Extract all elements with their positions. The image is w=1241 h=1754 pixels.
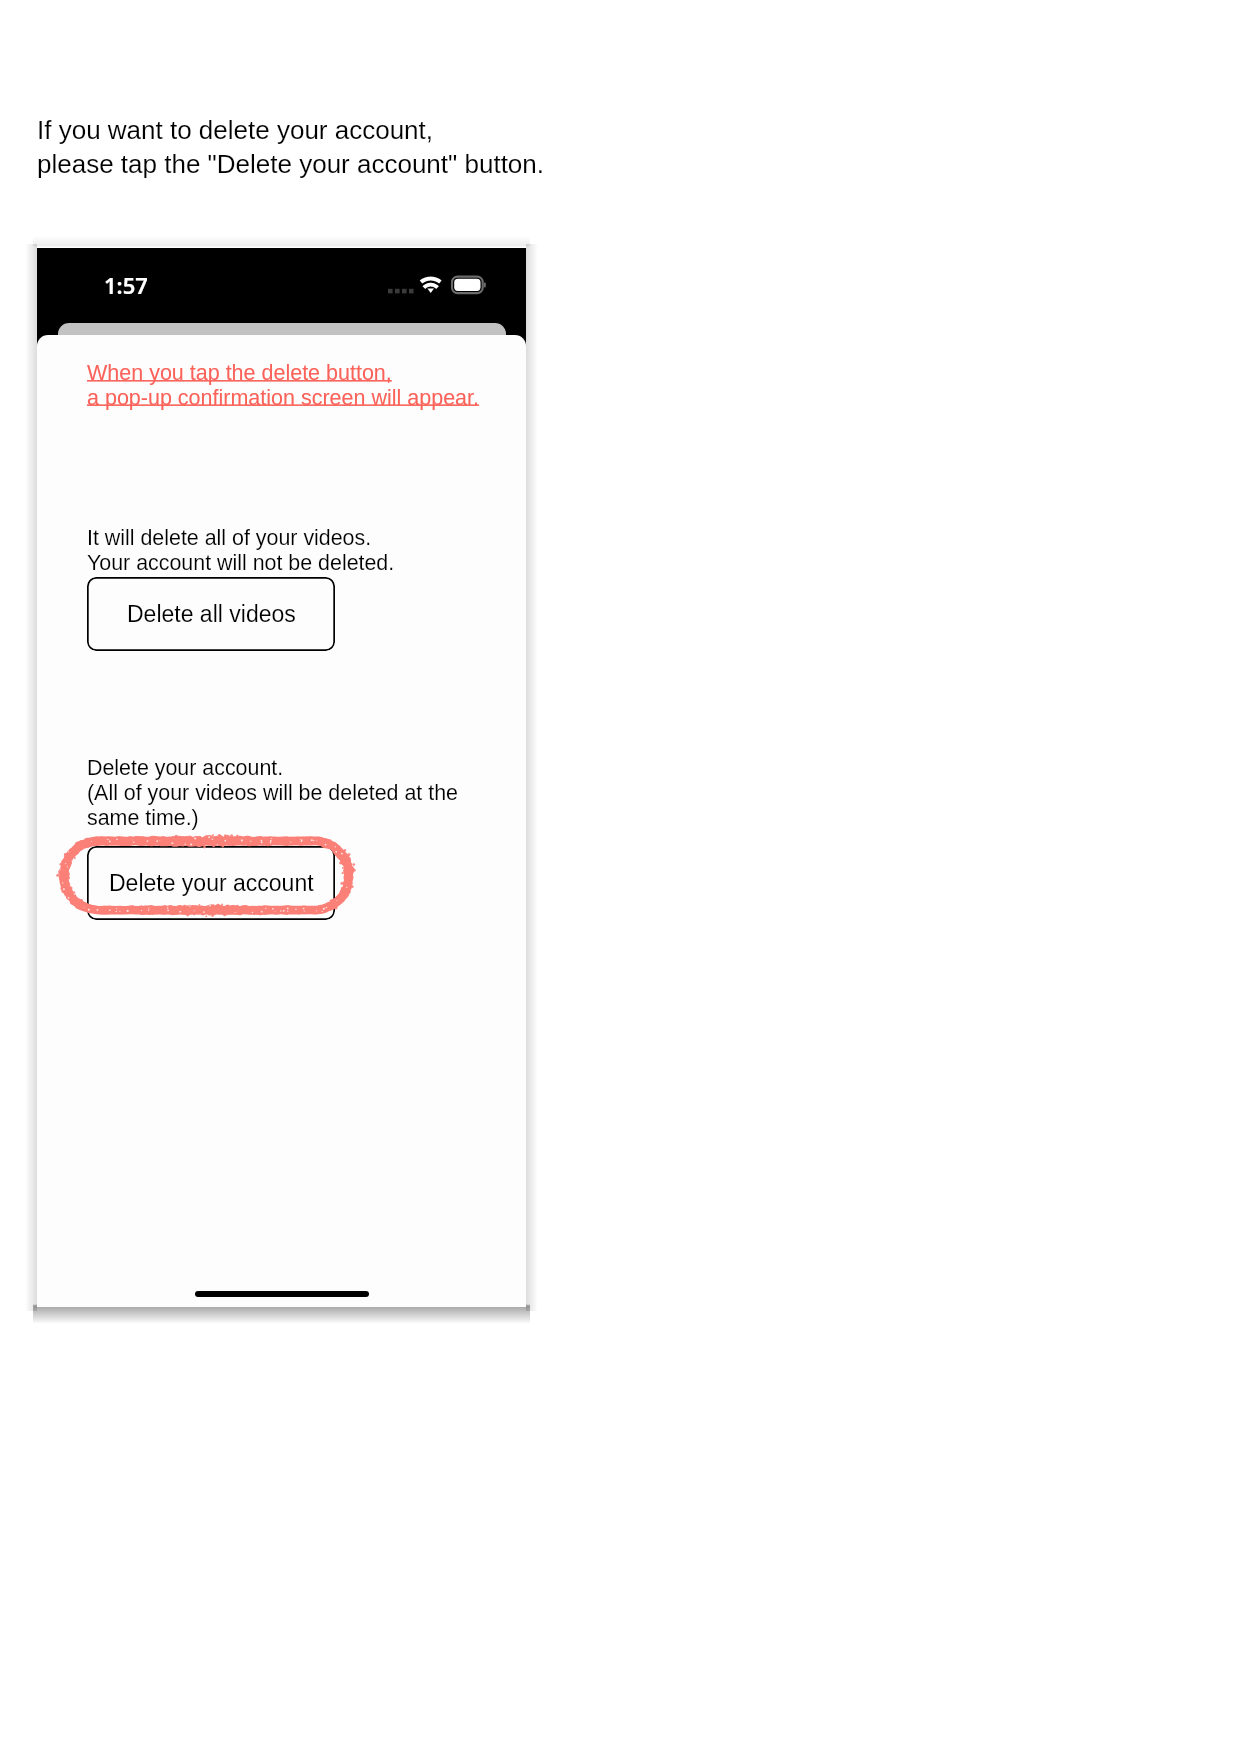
staticText: It will delete all of your videos. Your …: [87, 526, 395, 574]
staticText: When you tap the delete button, a pop-up…: [87, 361, 479, 409]
staticText: Delete your account: [109, 870, 314, 896]
staticText: Delete all videos: [127, 601, 296, 627]
button[interactable]: Delete all videos: [87, 577, 335, 651]
staticText: Delete your account. (All of your videos…: [87, 756, 458, 829]
button[interactable]: Delete your account: [87, 846, 335, 920]
staticText: If you want to delete your account, plea…: [37, 115, 545, 178]
other: Battery: [451, 276, 489, 296]
other: Cellular signal: [387, 276, 415, 296]
staticText: 1:57: [104, 270, 148, 300]
other: Wi-Fi: [420, 276, 444, 296]
